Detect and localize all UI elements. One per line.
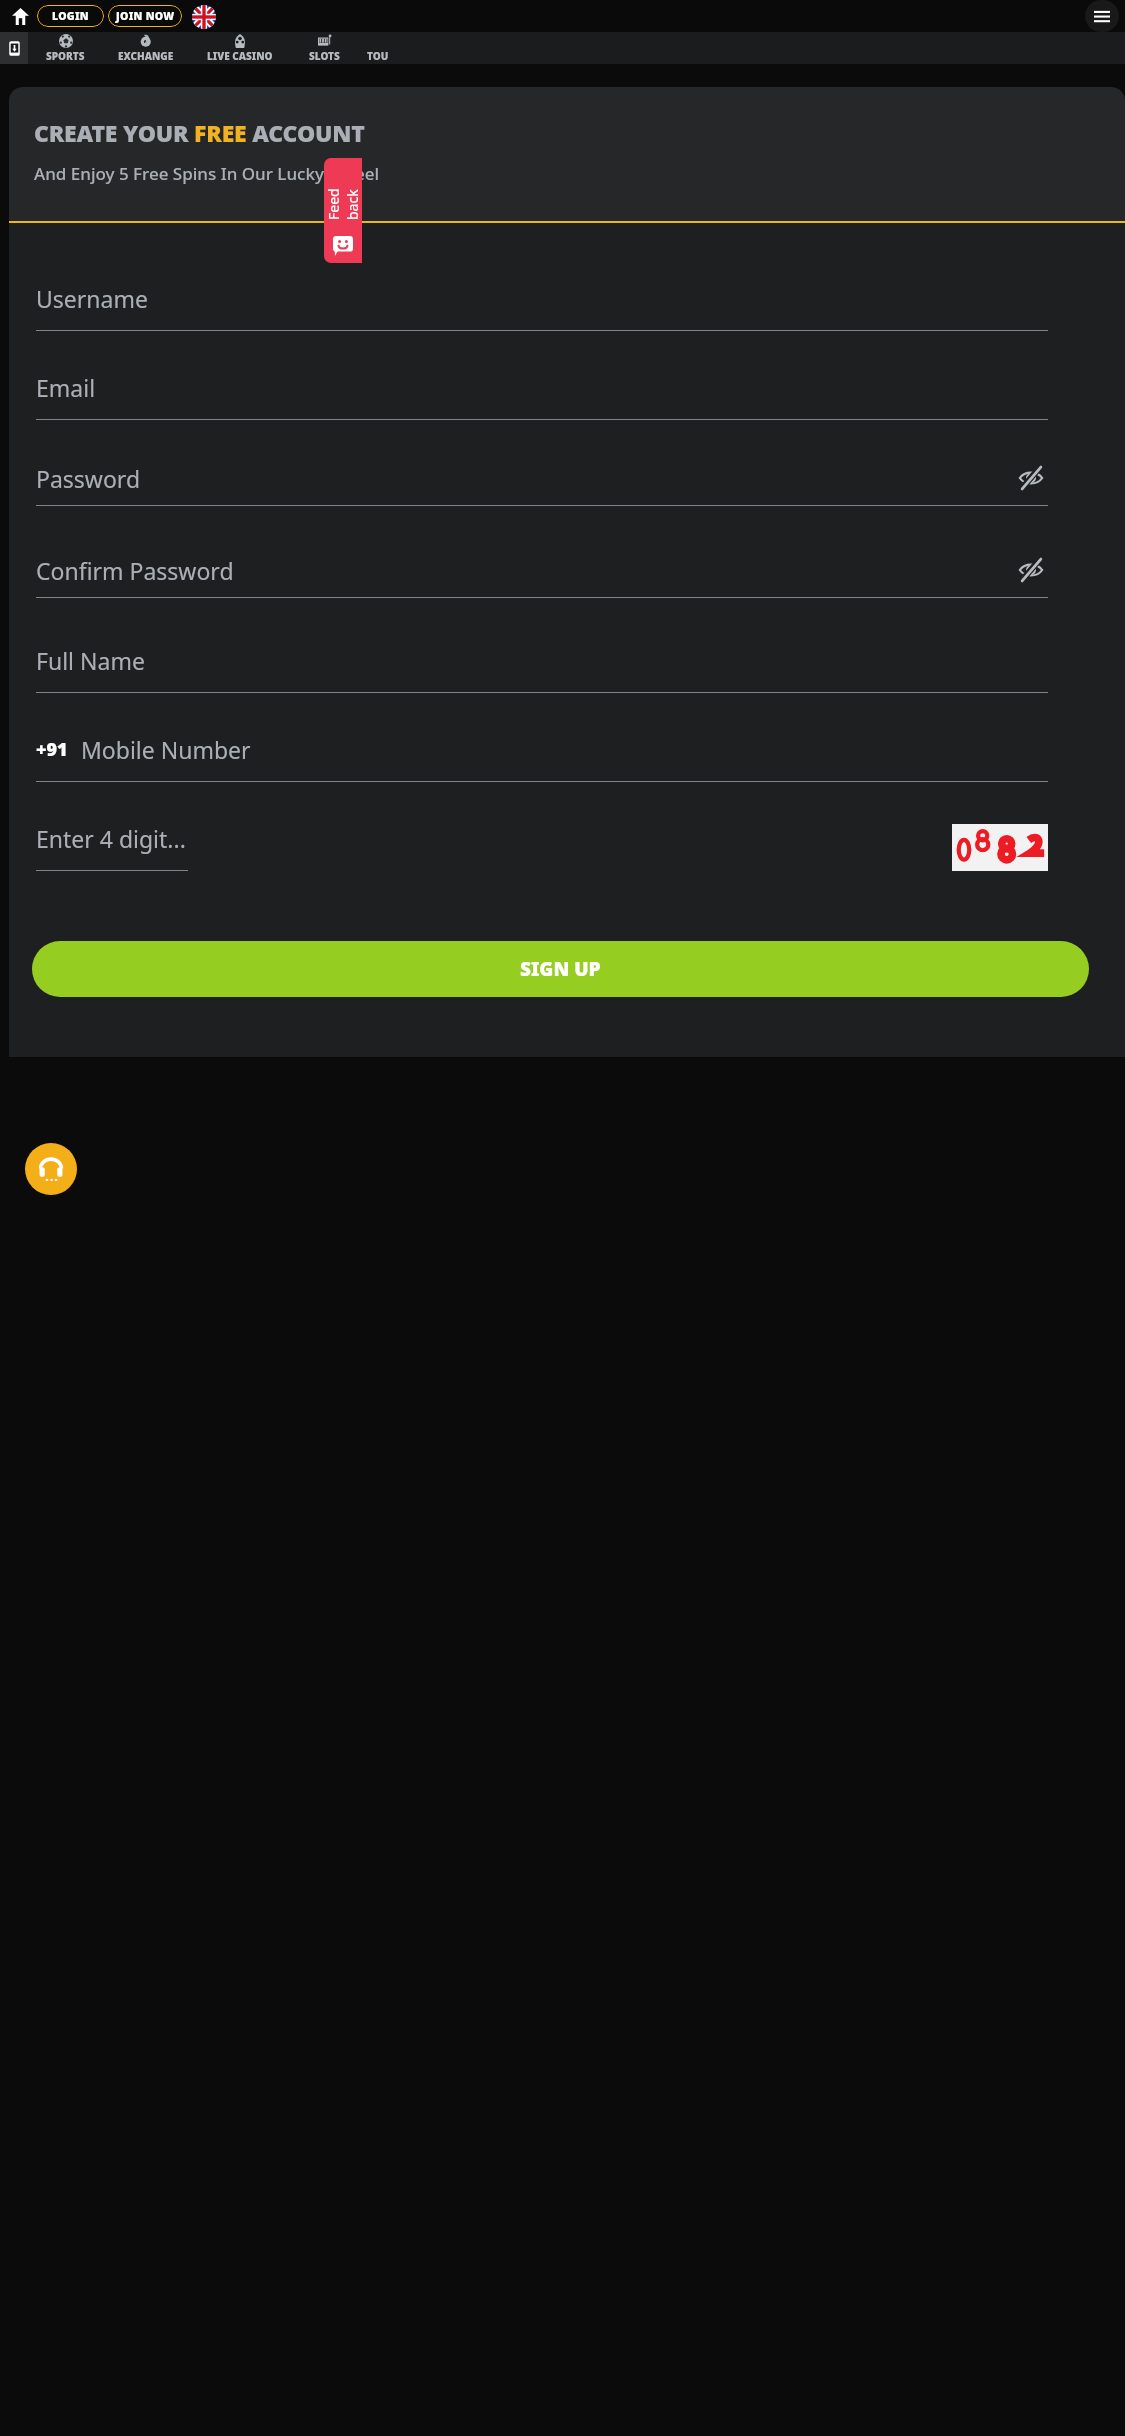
button[interactable]: Full Name bbox=[36, 645, 1048, 734]
staticText: Password bbox=[36, 463, 141, 494]
staticText: JOIN NOW bbox=[116, 9, 175, 23]
staticText: Enter 4 digit... bbox=[36, 823, 186, 854]
button[interactable]: Username bbox=[36, 283, 1048, 372]
button[interactable]: SPORTS bbox=[28, 32, 102, 64]
button[interactable]: JOIN NOW bbox=[108, 5, 182, 27]
staticText: Confirm Password bbox=[36, 555, 234, 586]
staticText: Feedback bbox=[324, 182, 362, 220]
staticText: SPORTS bbox=[46, 49, 85, 63]
staticText: And Enjoy 5 Free Spins In Our Lucky Whee… bbox=[34, 162, 380, 185]
button[interactable]: Customer support bbox=[25, 1143, 77, 1195]
button[interactable]: LOGIN bbox=[37, 5, 104, 27]
button[interactable]: Show password bbox=[1014, 553, 1048, 587]
button[interactable]: Email bbox=[36, 372, 1048, 461]
button[interactable]: +91 bbox=[36, 734, 1048, 823]
button[interactable]: EXCHANGE bbox=[102, 32, 190, 64]
button[interactable]: Download app bbox=[0, 32, 28, 64]
button[interactable]: Password bbox=[36, 461, 1048, 553]
staticText: Username bbox=[36, 283, 148, 314]
staticText: LOGIN bbox=[52, 9, 89, 23]
button[interactable]: TOU bbox=[358, 32, 398, 64]
staticText: SIGN UP bbox=[520, 956, 601, 982]
button[interactable]: Enter 4 digit... bbox=[36, 823, 188, 871]
staticText: Full Name bbox=[36, 645, 145, 676]
button[interactable]: Feedback bbox=[324, 158, 362, 263]
staticText: EXCHANGE bbox=[118, 49, 174, 63]
staticText: Mobile Number bbox=[81, 734, 251, 765]
button[interactable]: Confirm Password bbox=[36, 553, 1048, 645]
button[interactable]: SLOTS bbox=[290, 32, 358, 64]
staticText: SLOTS bbox=[309, 49, 340, 63]
button[interactable]: SIGN UP bbox=[32, 941, 1089, 997]
button[interactable]: Home bbox=[6, 2, 34, 30]
staticText: LIVE CASINO bbox=[207, 49, 273, 63]
staticText: +91 bbox=[36, 737, 68, 762]
staticText: TOU bbox=[367, 49, 389, 63]
button[interactable]: LIVE CASINO bbox=[190, 32, 290, 64]
staticText: CREATE YOUR FREE ACCOUNT bbox=[34, 117, 365, 148]
button[interactable]: Show password bbox=[1014, 461, 1048, 495]
staticText: Email bbox=[36, 372, 96, 403]
button[interactable]: Language bbox=[188, 1, 219, 32]
button[interactable]: Menu bbox=[1085, 0, 1119, 32]
